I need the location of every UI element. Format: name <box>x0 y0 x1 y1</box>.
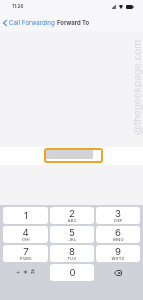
button[interactable]: Call Forwarding <box>0 14 59 31</box>
button[interactable]: 1 <box>3 207 48 224</box>
staticText: WXYZ <box>111 256 125 261</box>
staticText: 2 <box>69 208 75 220</box>
staticText: 6 <box>115 227 121 239</box>
staticText: 1 <box>24 210 28 222</box>
staticText: GHI <box>22 237 30 242</box>
staticText: @thegeekpage.com <box>131 39 143 135</box>
staticText: 3 <box>115 208 121 220</box>
button[interactable]: 2 <box>50 207 94 224</box>
button[interactable]: 6 <box>96 226 140 243</box>
button[interactable]: + ∗ # <box>3 264 48 281</box>
staticText: 7 <box>23 246 29 258</box>
staticText: 5 <box>69 227 75 239</box>
staticText: TUV <box>67 256 77 261</box>
button[interactable]: 0 <box>50 264 94 281</box>
staticText: 9 <box>115 246 121 258</box>
button[interactable]: 8 <box>50 245 94 262</box>
staticText: 11:26 <box>12 3 24 9</box>
staticText: 8 <box>69 246 75 258</box>
staticText: 4 <box>22 227 29 239</box>
button[interactable]: 3 <box>96 207 140 224</box>
button[interactable]: 5 <box>50 226 94 243</box>
button[interactable]: Delete <box>96 264 140 281</box>
button[interactable]: Phone number field <box>44 148 103 163</box>
staticText: Forward To <box>57 19 90 26</box>
staticText: ABC <box>67 218 77 223</box>
staticText: 0 <box>69 267 76 279</box>
staticText: DEF <box>114 218 123 223</box>
staticText: + ∗ # <box>16 268 36 276</box>
button[interactable]: 4 <box>3 226 48 243</box>
staticText: MNO <box>113 237 124 242</box>
staticText: JKL <box>68 237 77 242</box>
staticText: Call Forwarding <box>9 19 55 27</box>
button[interactable]: 9 <box>96 245 140 262</box>
button[interactable]: 7 <box>3 245 48 262</box>
staticText: PQRS <box>20 256 32 261</box>
